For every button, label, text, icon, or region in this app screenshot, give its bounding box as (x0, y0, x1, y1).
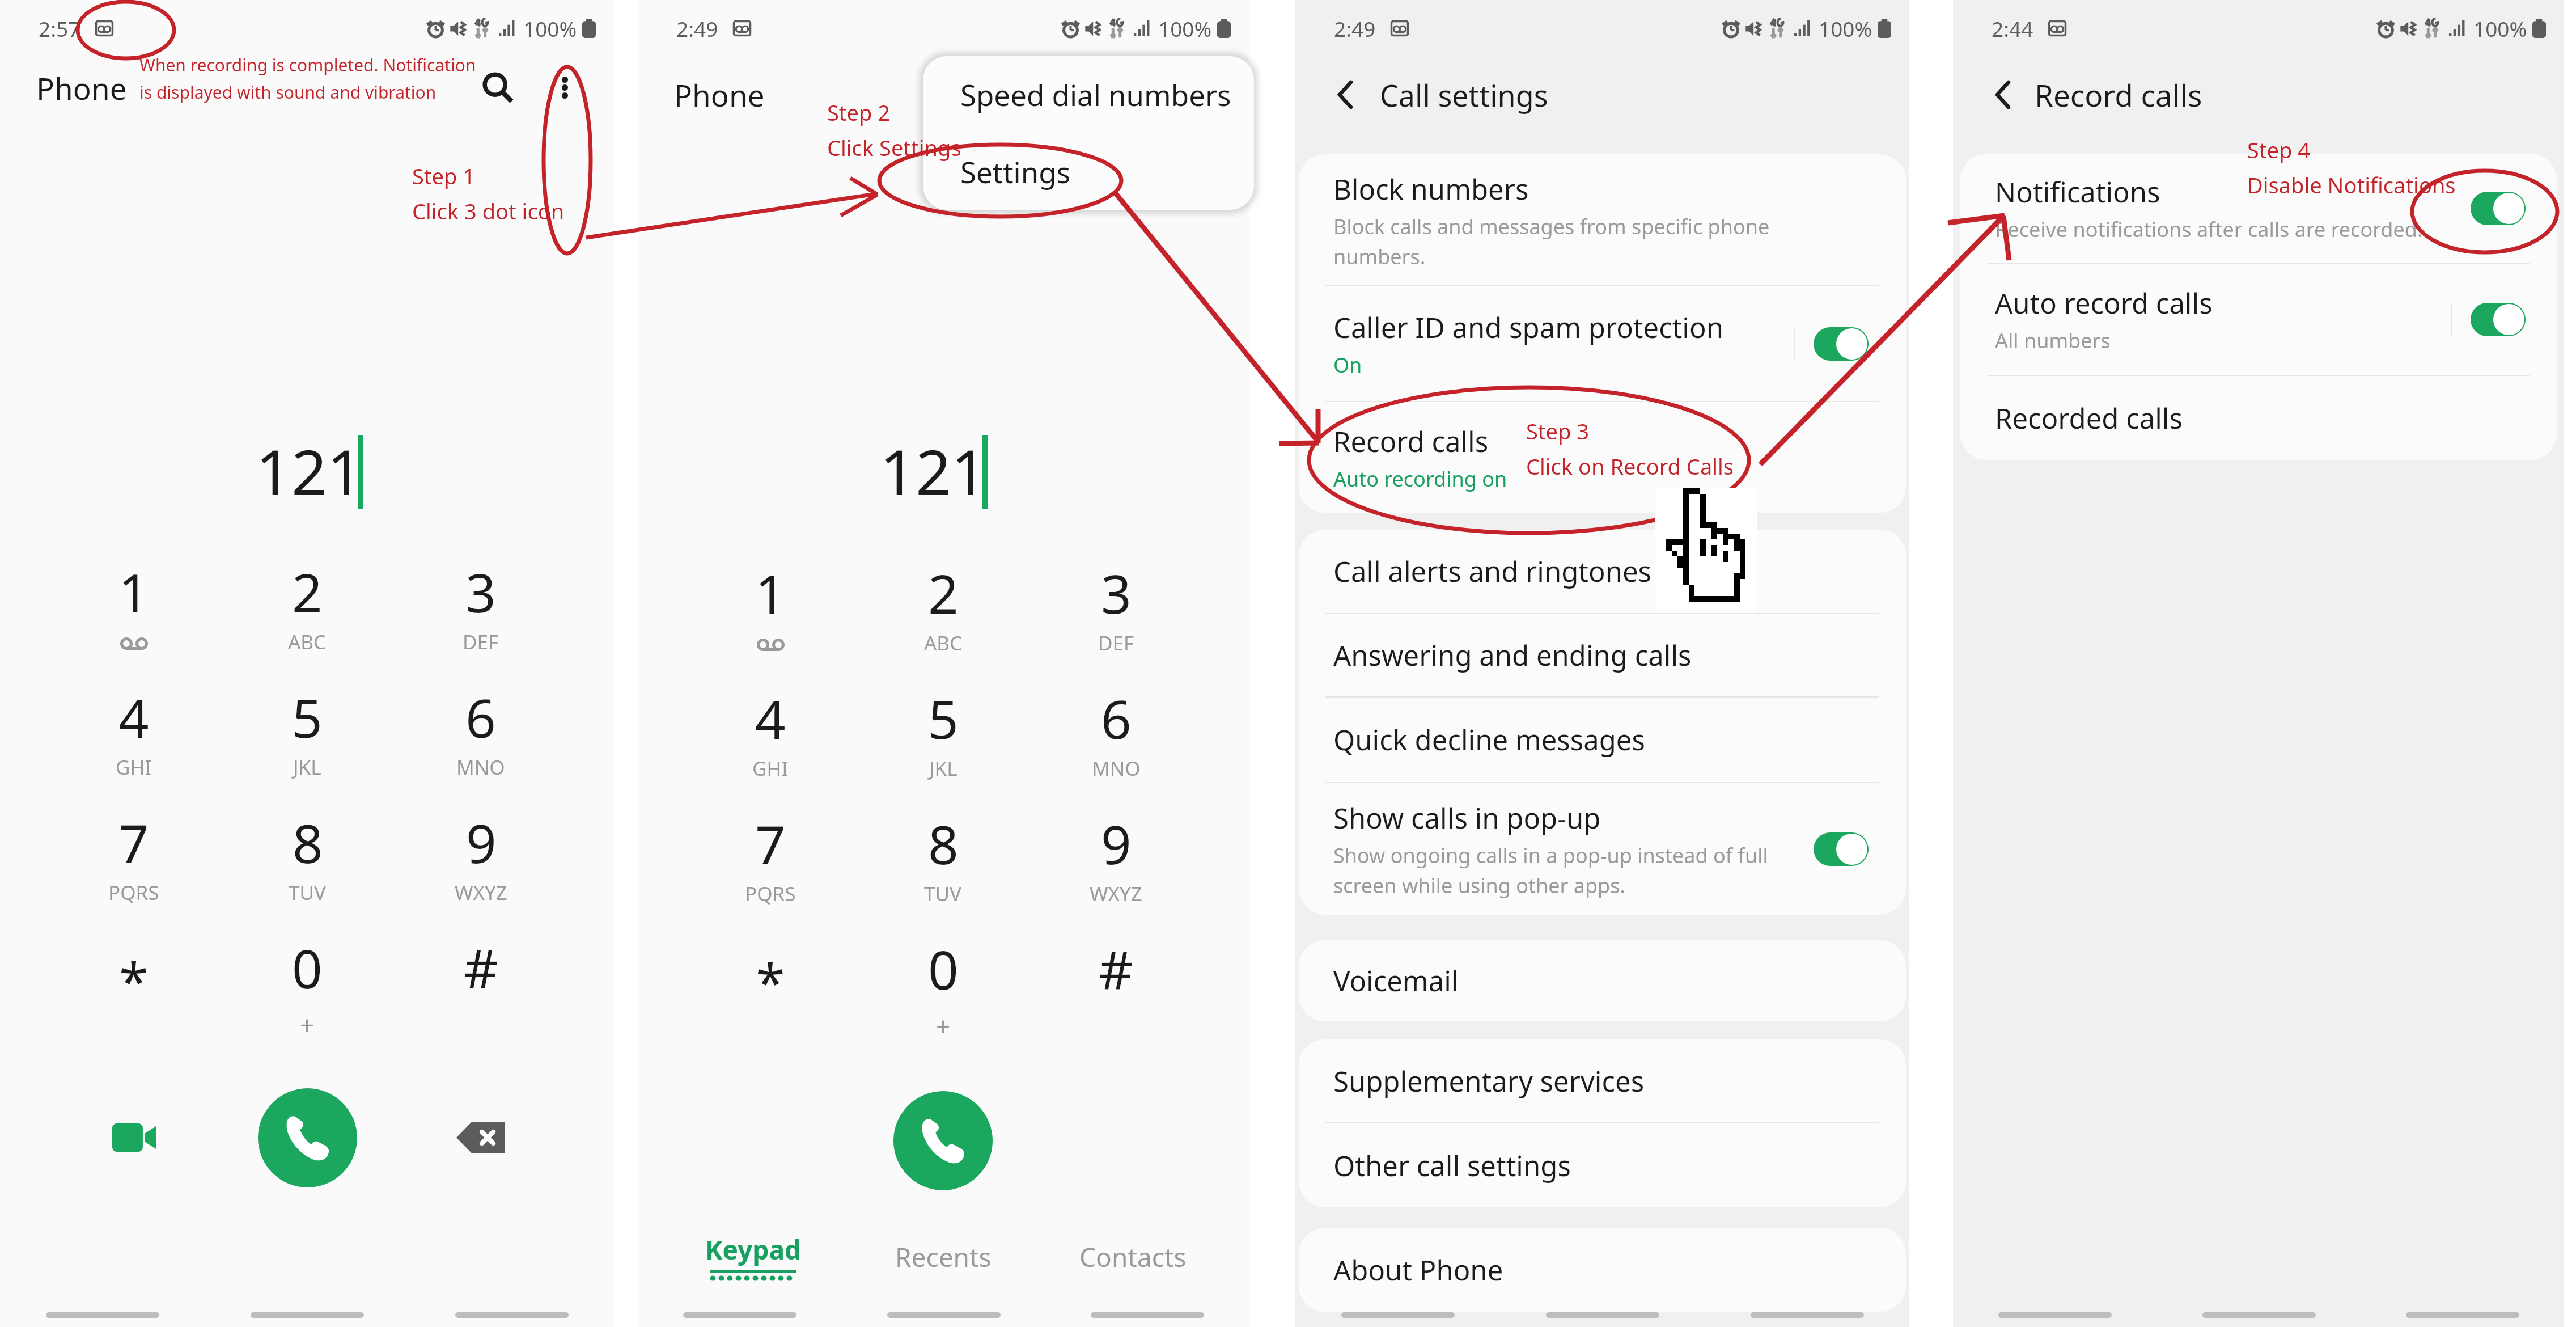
button[interactable]: 9 (394, 806, 567, 932)
staticText: Block numbers (1333, 170, 1529, 208)
button[interactable]: Recents (848, 1223, 1038, 1291)
button[interactable]: Toggle (1814, 327, 1869, 361)
staticText: 6 (465, 681, 496, 754)
button[interactable]: 6 (394, 681, 567, 806)
button[interactable]: 6 (1029, 682, 1202, 808)
button[interactable]: Backspace (441, 1098, 520, 1177)
staticText: Speed dial numbers (960, 75, 1231, 114)
staticText: PQRS (108, 879, 159, 906)
button[interactable]: Keypad (659, 1223, 848, 1291)
staticText: + (300, 1008, 315, 1042)
staticText: Other call settings (1333, 1147, 1571, 1185)
staticText: On (1333, 351, 1362, 379)
staticText: PQRS (745, 880, 796, 907)
button[interactable]: 4 (46, 681, 221, 806)
button[interactable]: Auto record calls (1960, 264, 2557, 375)
button[interactable]: 4 (684, 682, 857, 808)
staticText: Recorded calls (1995, 399, 2183, 437)
button[interactable]: Contacts (1038, 1223, 1228, 1291)
staticText: WXYZ (1090, 880, 1142, 907)
staticText: 3 (1101, 557, 1132, 629)
button[interactable]: Answering and ending calls (1299, 614, 1906, 696)
staticText: TUV (924, 880, 962, 907)
button[interactable]: Caller ID and spam protection (1299, 286, 1906, 401)
staticText: 0 (292, 932, 323, 1004)
staticText: JKL (929, 755, 957, 782)
staticText: Record calls (2035, 74, 2202, 115)
button[interactable]: Other call settings (1299, 1123, 1906, 1207)
staticText: 3 (465, 556, 496, 628)
staticText: GHI (116, 754, 152, 781)
button[interactable]: 2 (857, 557, 1029, 682)
staticText: Notifications (1995, 173, 2160, 211)
staticText: DEF (463, 628, 499, 656)
button[interactable]: 8 (221, 806, 394, 932)
button[interactable]: Quick decline messages (1299, 698, 1906, 782)
button[interactable]: Recorded calls (1960, 376, 2557, 460)
staticText: Contacts (1079, 1239, 1187, 1275)
staticText: Recents (895, 1239, 992, 1275)
button[interactable]: 0 (221, 932, 394, 1057)
staticText: Phone (36, 67, 127, 108)
button[interactable]: More options (531, 53, 599, 121)
button[interactable]: 3 (394, 556, 567, 681)
button[interactable]: Voicemail (1299, 940, 1906, 1021)
staticText: DEF (1098, 629, 1134, 657)
staticText: 2:44 (1992, 14, 2033, 43)
button[interactable]: Settings (923, 133, 1254, 210)
staticText: Step 2 Click Settings (827, 98, 961, 162)
button[interactable]: 2 (221, 556, 394, 681)
button[interactable]: Video call (94, 1098, 173, 1177)
button[interactable]: Supplementary services (1299, 1039, 1906, 1122)
staticText: 2 (928, 557, 959, 629)
button[interactable]: 7 (684, 808, 857, 933)
staticText: Show calls in pop-up (1333, 799, 1601, 837)
staticText: 100% (1158, 14, 1212, 43)
button[interactable]: Toggle (2471, 192, 2526, 225)
staticText: Caller ID and spam protection (1333, 308, 1723, 346)
button[interactable]: * (46, 932, 221, 1057)
staticText: Step 3 Click on Record Calls (1526, 416, 1734, 481)
button[interactable]: Toggle (1814, 832, 1869, 866)
button[interactable]: Speed dial numbers (923, 56, 1254, 133)
button[interactable]: 7 (46, 806, 221, 932)
button[interactable]: * (684, 933, 857, 1058)
staticText: 0 (928, 933, 959, 1005)
button[interactable]: Notifications (1960, 154, 2557, 263)
button[interactable]: Call (893, 1091, 993, 1190)
button[interactable]: 0 (857, 933, 1029, 1058)
button[interactable]: # (394, 932, 567, 1057)
button[interactable]: Call alerts and ringtones (1299, 530, 1906, 613)
staticText: JKL (293, 754, 321, 781)
staticText: 1 (755, 557, 786, 629)
staticText: 2 (292, 556, 323, 628)
button[interactable]: Back (1976, 67, 2030, 122)
staticText: Call alerts and ringtones (1333, 552, 1652, 590)
button[interactable]: 9 (1029, 808, 1202, 933)
button[interactable]: Record calls (1299, 402, 1906, 513)
button[interactable]: Search (464, 53, 532, 121)
staticText: Auto recording on (1333, 465, 1507, 493)
button[interactable]: Call (258, 1088, 357, 1187)
staticText: TUV (289, 879, 327, 906)
button[interactable]: About Phone (1299, 1228, 1906, 1312)
button[interactable]: 1 (684, 557, 857, 682)
button[interactable]: 1 (46, 556, 221, 681)
staticText: * (119, 944, 149, 1017)
staticText: Step 4 Disable Notifications (2247, 135, 2456, 200)
staticText: 100% (2473, 14, 2527, 43)
button[interactable]: Block numbers (1299, 154, 1906, 285)
button[interactable]: 8 (857, 808, 1029, 933)
staticText: Call settings (1380, 75, 1548, 115)
staticText: 8 (293, 806, 323, 879)
button[interactable]: Show calls in pop-up (1299, 783, 1906, 915)
staticText: 4 (118, 681, 149, 754)
button[interactable]: # (1029, 933, 1202, 1058)
button[interactable]: Back (1318, 67, 1372, 122)
button[interactable]: Toggle (2471, 303, 2526, 336)
staticText: Receive notifications after calls are re… (1995, 215, 2423, 243)
button[interactable]: 5 (221, 681, 394, 806)
button[interactable]: 5 (857, 682, 1029, 808)
staticText: Phone (674, 74, 765, 115)
button[interactable]: 3 (1029, 557, 1202, 682)
